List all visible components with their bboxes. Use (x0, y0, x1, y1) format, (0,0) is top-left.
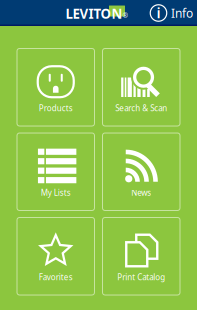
button[interactable]: News (102, 133, 180, 210)
staticText: Favorites (39, 272, 73, 282)
staticText: Search & Scan (115, 103, 167, 113)
button[interactable]: Favorites (17, 217, 94, 295)
staticText: Info (171, 5, 193, 21)
button[interactable]: Print Catalog (102, 217, 180, 295)
staticText: My Lists (41, 187, 71, 198)
staticText: Products (39, 103, 73, 113)
staticText: News (131, 187, 151, 198)
staticText: ® (122, 11, 128, 20)
button[interactable]: i (149, 0, 197, 26)
button[interactable]: My Lists (17, 133, 94, 210)
button[interactable]: Products (17, 48, 94, 126)
button[interactable]: Search & Scan (102, 48, 180, 126)
staticText: Print Catalog (117, 272, 165, 282)
staticText: i (156, 3, 160, 22)
staticText: LEVITON (65, 5, 122, 22)
